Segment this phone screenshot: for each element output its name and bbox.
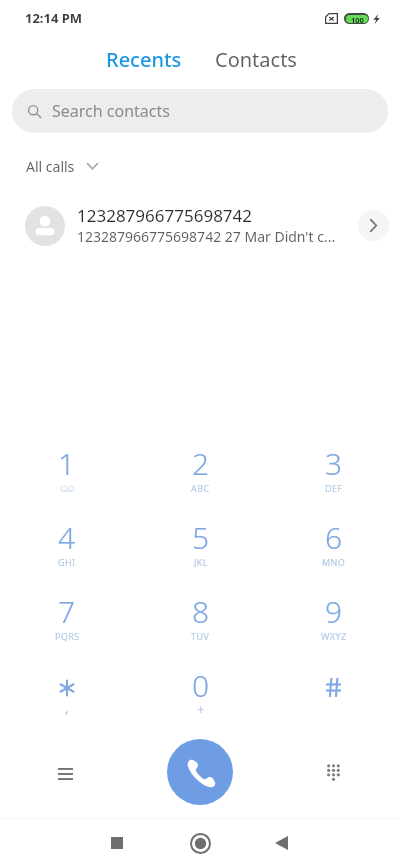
button[interactable]: 6: [267, 511, 400, 585]
button[interactable]: Recents: [100, 42, 188, 76]
staticText: 8: [192, 591, 210, 632]
button[interactable]: Dialpad: [311, 750, 355, 794]
staticText: 5: [192, 517, 210, 558]
button[interactable]: Contacts: [209, 42, 303, 76]
button[interactable]: 0: [134, 659, 267, 733]
button[interactable]: Search contacts: [12, 89, 388, 133]
staticText: WXYZ: [321, 630, 347, 642]
button[interactable]: Pound: [267, 659, 400, 733]
staticText: 100: [351, 15, 364, 23]
button[interactable]: Overview: [97, 823, 137, 863]
staticText: ABC: [191, 482, 210, 494]
button[interactable]: 5: [134, 511, 267, 585]
staticText: 3: [325, 443, 343, 484]
staticText: +: [197, 700, 205, 718]
button[interactable]: 2: [134, 437, 267, 511]
button[interactable]: Back: [261, 823, 301, 863]
staticText: 2: [192, 443, 210, 484]
button[interactable]: 123287966775698742: [0, 196, 400, 256]
button[interactable]: Call details: [358, 210, 389, 241]
button[interactable]: 8: [134, 585, 267, 659]
staticText: 7: [58, 591, 76, 632]
staticText: Search contacts: [52, 100, 170, 122]
staticText: MNO: [322, 556, 346, 568]
button[interactable]: 9: [267, 585, 400, 659]
button[interactable]: Home: [180, 823, 220, 863]
button[interactable]: Star: [0, 659, 134, 733]
button[interactable]: 3: [267, 437, 400, 511]
staticText: 12:14 PM: [25, 9, 83, 27]
staticText: 4: [58, 517, 76, 558]
staticText: 6: [325, 517, 343, 558]
staticText: 0: [192, 665, 210, 706]
staticText: All calls: [26, 157, 75, 176]
staticText: 123287966775698742 27 Mar Didn't c...: [77, 227, 337, 246]
button[interactable]: 7: [0, 585, 134, 659]
staticText: GHI: [58, 556, 76, 568]
staticText: 123287966775698742: [77, 204, 327, 227]
button[interactable]: 1: [0, 437, 134, 511]
button[interactable]: 4: [0, 511, 134, 585]
staticText: ,: [65, 698, 69, 717]
staticText: DEF: [325, 482, 343, 494]
button[interactable]: All calls: [20, 150, 105, 182]
staticText: 1: [58, 443, 76, 484]
staticText: PQRS: [55, 630, 80, 642]
staticText: Contacts: [215, 46, 297, 73]
staticText: Recents: [106, 46, 182, 73]
button[interactable]: Call: [167, 739, 233, 805]
staticText: 9: [325, 591, 343, 632]
staticText: TUV: [191, 630, 210, 642]
button[interactable]: Call log menu: [43, 750, 87, 794]
staticText: JKL: [194, 556, 208, 568]
